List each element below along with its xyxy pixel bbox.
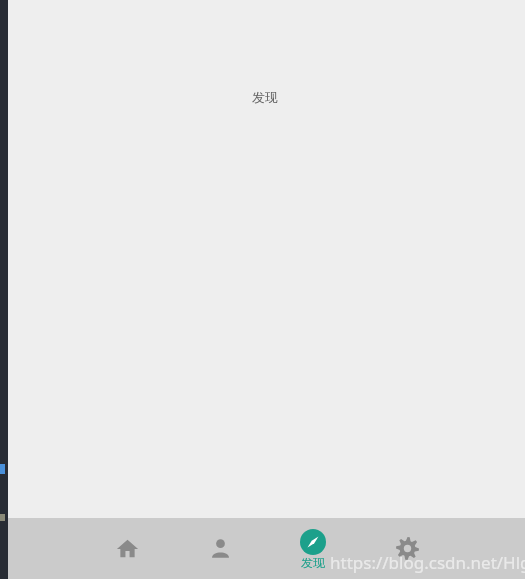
button[interactable]: Home	[103, 524, 151, 572]
staticText: 发现	[301, 555, 325, 570]
staticText: 发现	[252, 89, 278, 105]
button[interactable]: Profile	[196, 524, 244, 572]
button[interactable]: 发现	[290, 529, 336, 570]
button[interactable]: Settings	[383, 524, 431, 572]
staticText: https://blog.csdn.net/Hlgrkj	[330, 551, 525, 574]
